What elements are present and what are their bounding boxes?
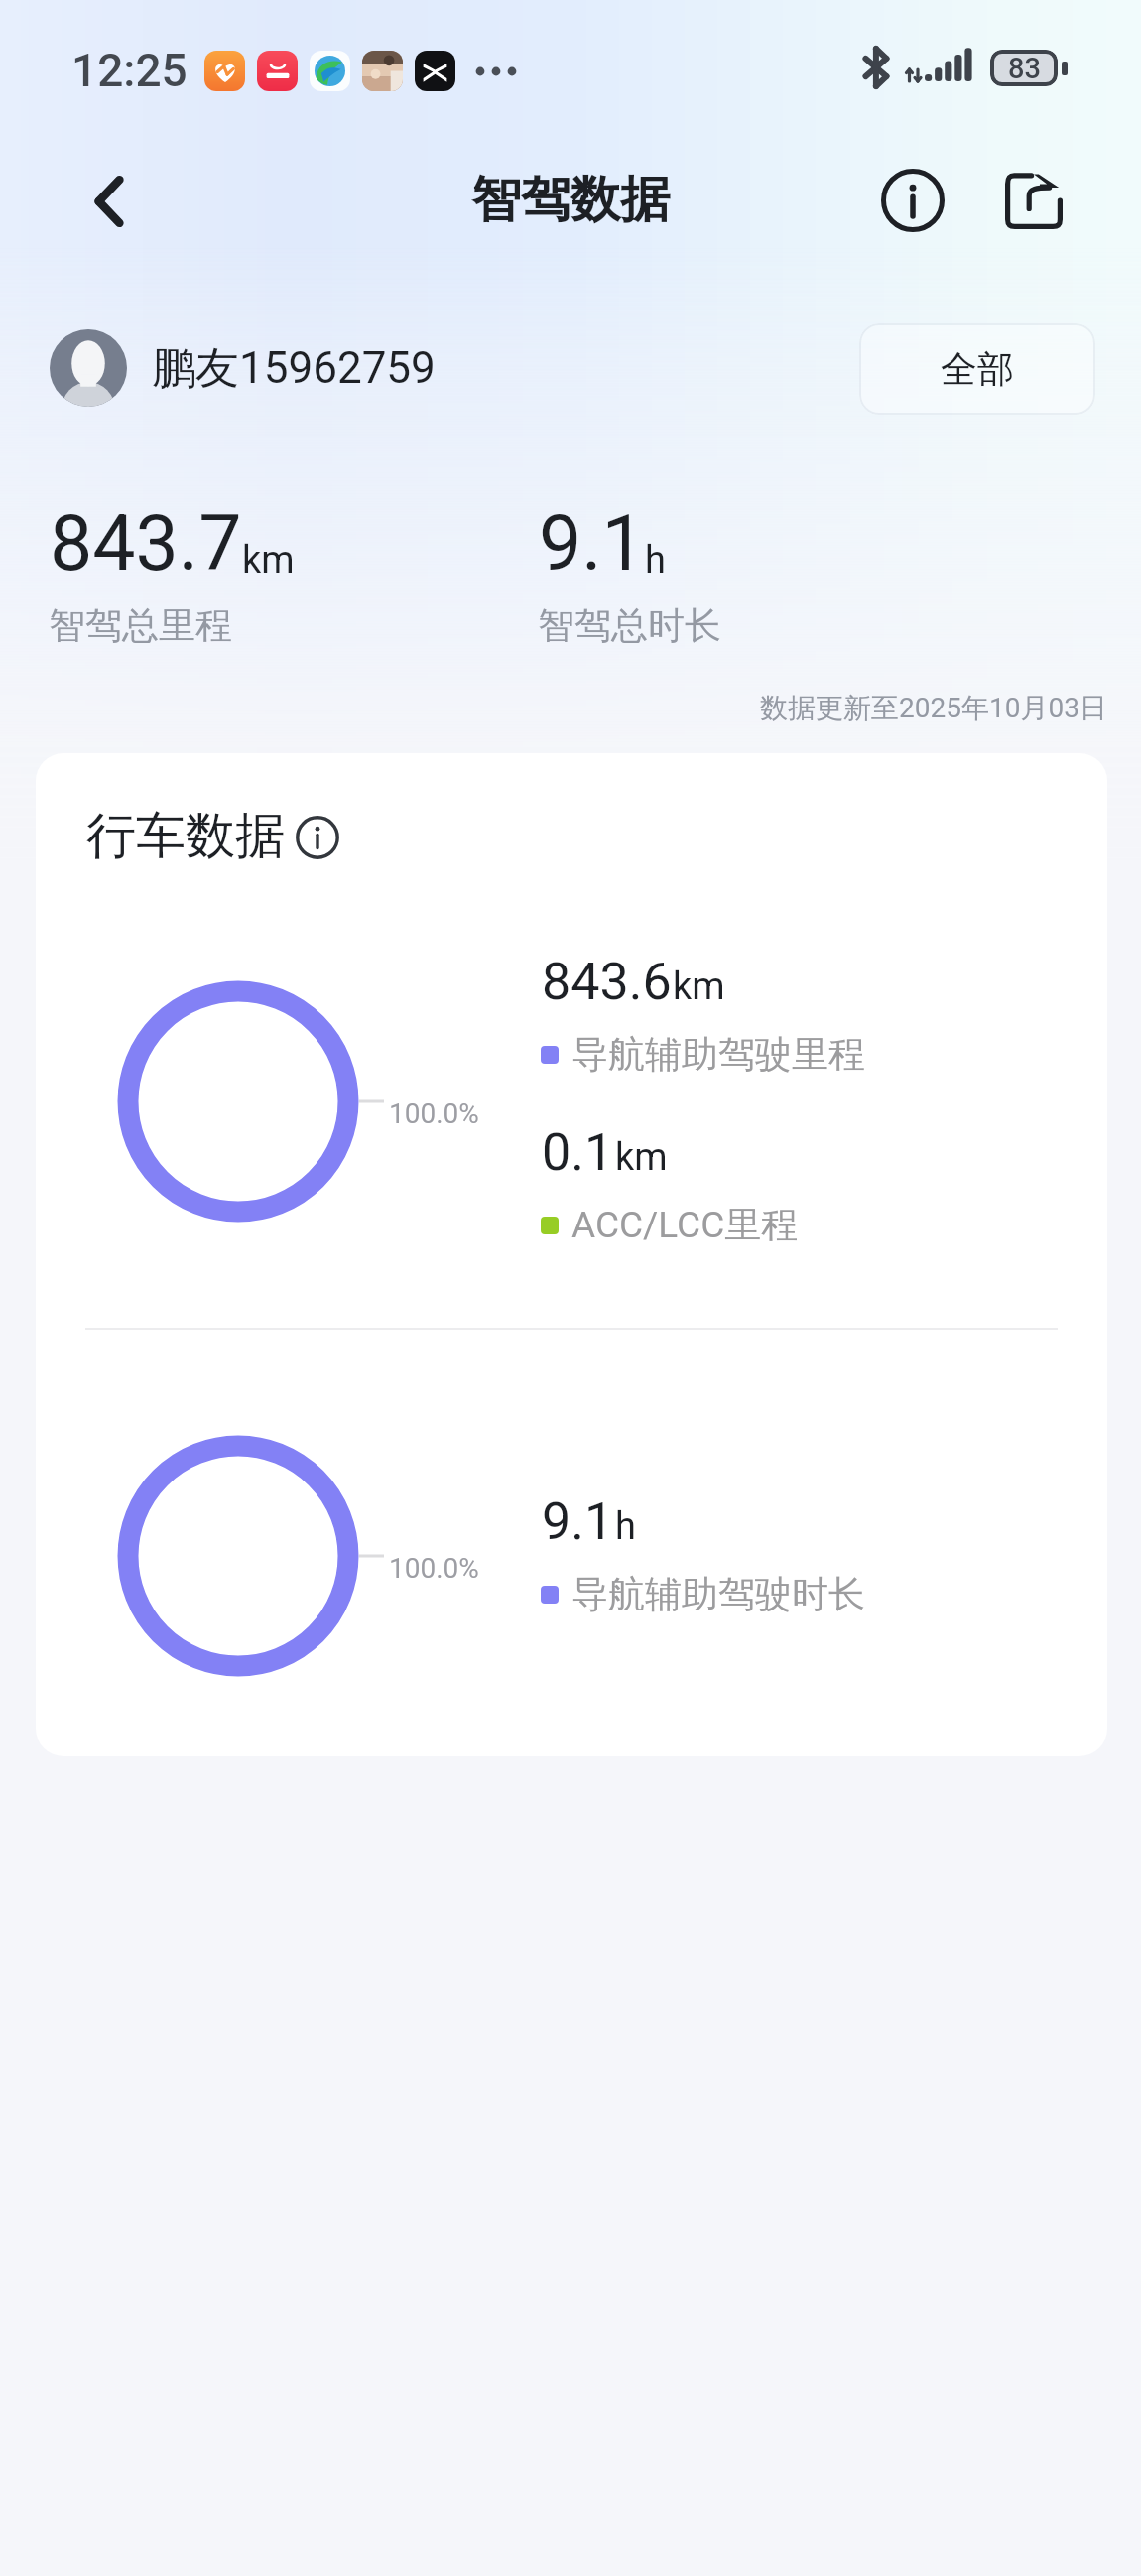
staticText: 智驾总里程 (49, 602, 232, 649)
button[interactable]: Share (988, 155, 1079, 246)
staticText: 全部 (941, 346, 1014, 393)
staticText: km (615, 1135, 668, 1180)
staticText: 12:25 (71, 44, 188, 97)
staticText: 导航辅助驾驶时长 (571, 1571, 865, 1617)
staticText: 9.1 (539, 499, 645, 588)
button[interactable]: 全部 (859, 323, 1095, 415)
staticText: 导航辅助驾驶里程 (571, 1031, 865, 1078)
staticText: 智驾数据 (471, 169, 670, 231)
staticText: 9.1 (542, 1491, 614, 1552)
button[interactable]: About driving data (287, 807, 348, 868)
staticText: h (645, 538, 666, 582)
staticText: 鹏友15962759 (152, 341, 436, 396)
staticText: 智驾总时长 (538, 602, 721, 649)
staticText: km (242, 538, 295, 582)
staticText: 843.6 (542, 952, 672, 1012)
staticText: ACC/LCC里程 (571, 1202, 799, 1248)
staticText: 行车数据 (86, 805, 285, 867)
staticText: 0.1 (542, 1122, 614, 1183)
button[interactable]: Back (63, 156, 155, 247)
staticText: 843.7 (50, 499, 242, 588)
staticText: h (615, 1504, 636, 1549)
staticText: 数据更新至2025年10月03日 (760, 691, 1107, 725)
staticText: 100.0% (389, 1097, 479, 1130)
button[interactable]: Info (867, 155, 958, 246)
staticText: 83 (1008, 52, 1041, 85)
staticText: km (673, 965, 725, 1009)
staticText: 100.0% (389, 1552, 479, 1585)
